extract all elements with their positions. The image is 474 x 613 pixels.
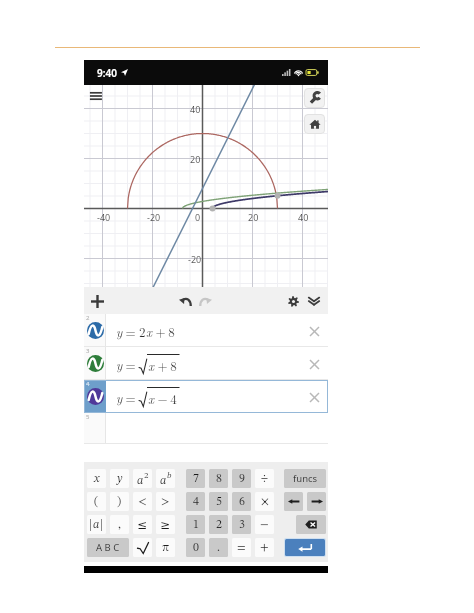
button[interactable]: − bbox=[255, 515, 274, 534]
staticText: − 4 bbox=[155, 389, 177, 407]
button[interactable]: < bbox=[133, 492, 152, 511]
button[interactable]: 6 bbox=[232, 492, 251, 511]
staticText: + 8 bbox=[153, 322, 175, 340]
staticText: -20 bbox=[188, 253, 202, 265]
staticText: . bbox=[217, 542, 220, 554]
button[interactable]: Redo bbox=[196, 291, 216, 311]
staticText: 2 bbox=[139, 322, 146, 340]
staticText: x bbox=[146, 322, 153, 340]
staticText: + 8 bbox=[155, 356, 177, 374]
staticText: 3 bbox=[86, 347, 90, 355]
button[interactable]: Delete expression bbox=[306, 389, 322, 405]
button[interactable]: 4 bbox=[186, 492, 205, 511]
staticText: 40 bbox=[298, 211, 309, 223]
button[interactable]: . bbox=[209, 538, 228, 557]
button[interactable]: Graph tools bbox=[304, 88, 325, 108]
staticText: ) bbox=[117, 496, 122, 508]
button[interactable]: 9 bbox=[232, 469, 251, 488]
staticText: b bbox=[167, 471, 172, 480]
button[interactable]: ) bbox=[110, 492, 129, 511]
staticText: = bbox=[123, 322, 139, 340]
staticText: = bbox=[123, 355, 139, 373]
staticText: + bbox=[260, 542, 269, 554]
button[interactable]: > bbox=[156, 492, 175, 511]
staticText: x bbox=[94, 473, 100, 485]
staticText: 9:40 bbox=[97, 66, 117, 80]
staticText: , bbox=[118, 519, 121, 531]
button[interactable]: Square root bbox=[133, 538, 152, 557]
button[interactable]: 0 bbox=[186, 538, 205, 557]
staticText: > bbox=[161, 496, 170, 508]
button[interactable]: | bbox=[87, 515, 106, 534]
staticText: = bbox=[123, 388, 139, 406]
staticText: y bbox=[116, 355, 123, 373]
button[interactable]: Backspace bbox=[296, 515, 326, 534]
button[interactable]: 2 bbox=[209, 515, 228, 534]
staticText: | bbox=[89, 519, 93, 531]
staticText: 4 bbox=[86, 380, 90, 388]
staticText: 8 bbox=[216, 473, 222, 485]
button[interactable]: Enter bbox=[285, 539, 325, 556]
button[interactable]: = bbox=[232, 538, 251, 557]
staticText: 2 bbox=[216, 519, 222, 531]
button[interactable]: Delete expression bbox=[306, 323, 322, 339]
button[interactable]: 4 bbox=[84, 380, 328, 413]
staticText: 5 bbox=[216, 496, 222, 508]
staticText: 7 bbox=[193, 473, 199, 485]
button[interactable]: Home bbox=[304, 114, 325, 134]
button[interactable]: a bbox=[156, 469, 175, 488]
staticText: ≤ bbox=[137, 518, 148, 532]
staticText: funcs bbox=[293, 472, 318, 485]
staticText: A B C bbox=[96, 541, 120, 554]
button[interactable]: 1 bbox=[186, 515, 205, 534]
button[interactable]: 2 bbox=[84, 314, 328, 347]
button[interactable]: a bbox=[133, 469, 152, 488]
button[interactable]: ≥ bbox=[156, 515, 175, 534]
staticText: < bbox=[138, 496, 147, 508]
button[interactable]: 7 bbox=[186, 469, 205, 488]
staticText: 5 bbox=[86, 413, 90, 421]
button[interactable]: 5 bbox=[209, 492, 228, 511]
button[interactable]: ( bbox=[87, 492, 106, 511]
button[interactable]: 5 bbox=[84, 413, 328, 444]
staticText: π bbox=[162, 542, 170, 554]
button[interactable]: 8 bbox=[209, 469, 228, 488]
button[interactable]: ÷ bbox=[255, 469, 274, 488]
button[interactable]: Menu bbox=[88, 88, 104, 104]
button[interactable]: y bbox=[110, 469, 129, 488]
staticText: 3 bbox=[239, 519, 245, 531]
button[interactable]: 3 bbox=[232, 515, 251, 534]
staticText: x bbox=[148, 356, 155, 374]
staticText: × bbox=[261, 496, 269, 508]
button[interactable]: Add expression bbox=[87, 291, 107, 311]
staticText: 1 bbox=[193, 519, 199, 531]
staticText: 9 bbox=[239, 473, 245, 485]
staticText: 2 bbox=[144, 471, 149, 480]
staticText: 20 bbox=[248, 211, 259, 223]
staticText: ( bbox=[94, 496, 99, 508]
button[interactable]: π bbox=[156, 538, 175, 557]
staticText: − bbox=[260, 519, 269, 531]
staticText: -40 bbox=[97, 211, 111, 223]
staticText: 4 bbox=[193, 496, 199, 508]
button[interactable]: Delete expression bbox=[306, 356, 322, 372]
button[interactable]: 3 bbox=[84, 347, 328, 380]
button[interactable]: ≤ bbox=[133, 515, 152, 534]
button[interactable]: , bbox=[110, 515, 129, 534]
button[interactable]: A B C bbox=[87, 538, 129, 557]
button[interactable]: Graph settings bbox=[283, 291, 303, 311]
button[interactable]: Collapse bbox=[304, 291, 324, 311]
button[interactable]: funcs bbox=[284, 469, 326, 488]
staticText: y bbox=[116, 322, 123, 340]
button[interactable]: Move right bbox=[307, 492, 326, 511]
button[interactable]: + bbox=[255, 538, 274, 557]
button[interactable]: Undo bbox=[175, 291, 195, 311]
staticText: a bbox=[160, 475, 167, 487]
button[interactable]: Move left bbox=[284, 492, 303, 511]
staticText: 40 bbox=[190, 103, 201, 115]
staticText: x bbox=[148, 389, 155, 407]
staticText: ÷ bbox=[261, 473, 268, 485]
button[interactable]: × bbox=[255, 492, 274, 511]
staticText: y bbox=[116, 388, 123, 406]
button[interactable]: x bbox=[87, 469, 106, 488]
